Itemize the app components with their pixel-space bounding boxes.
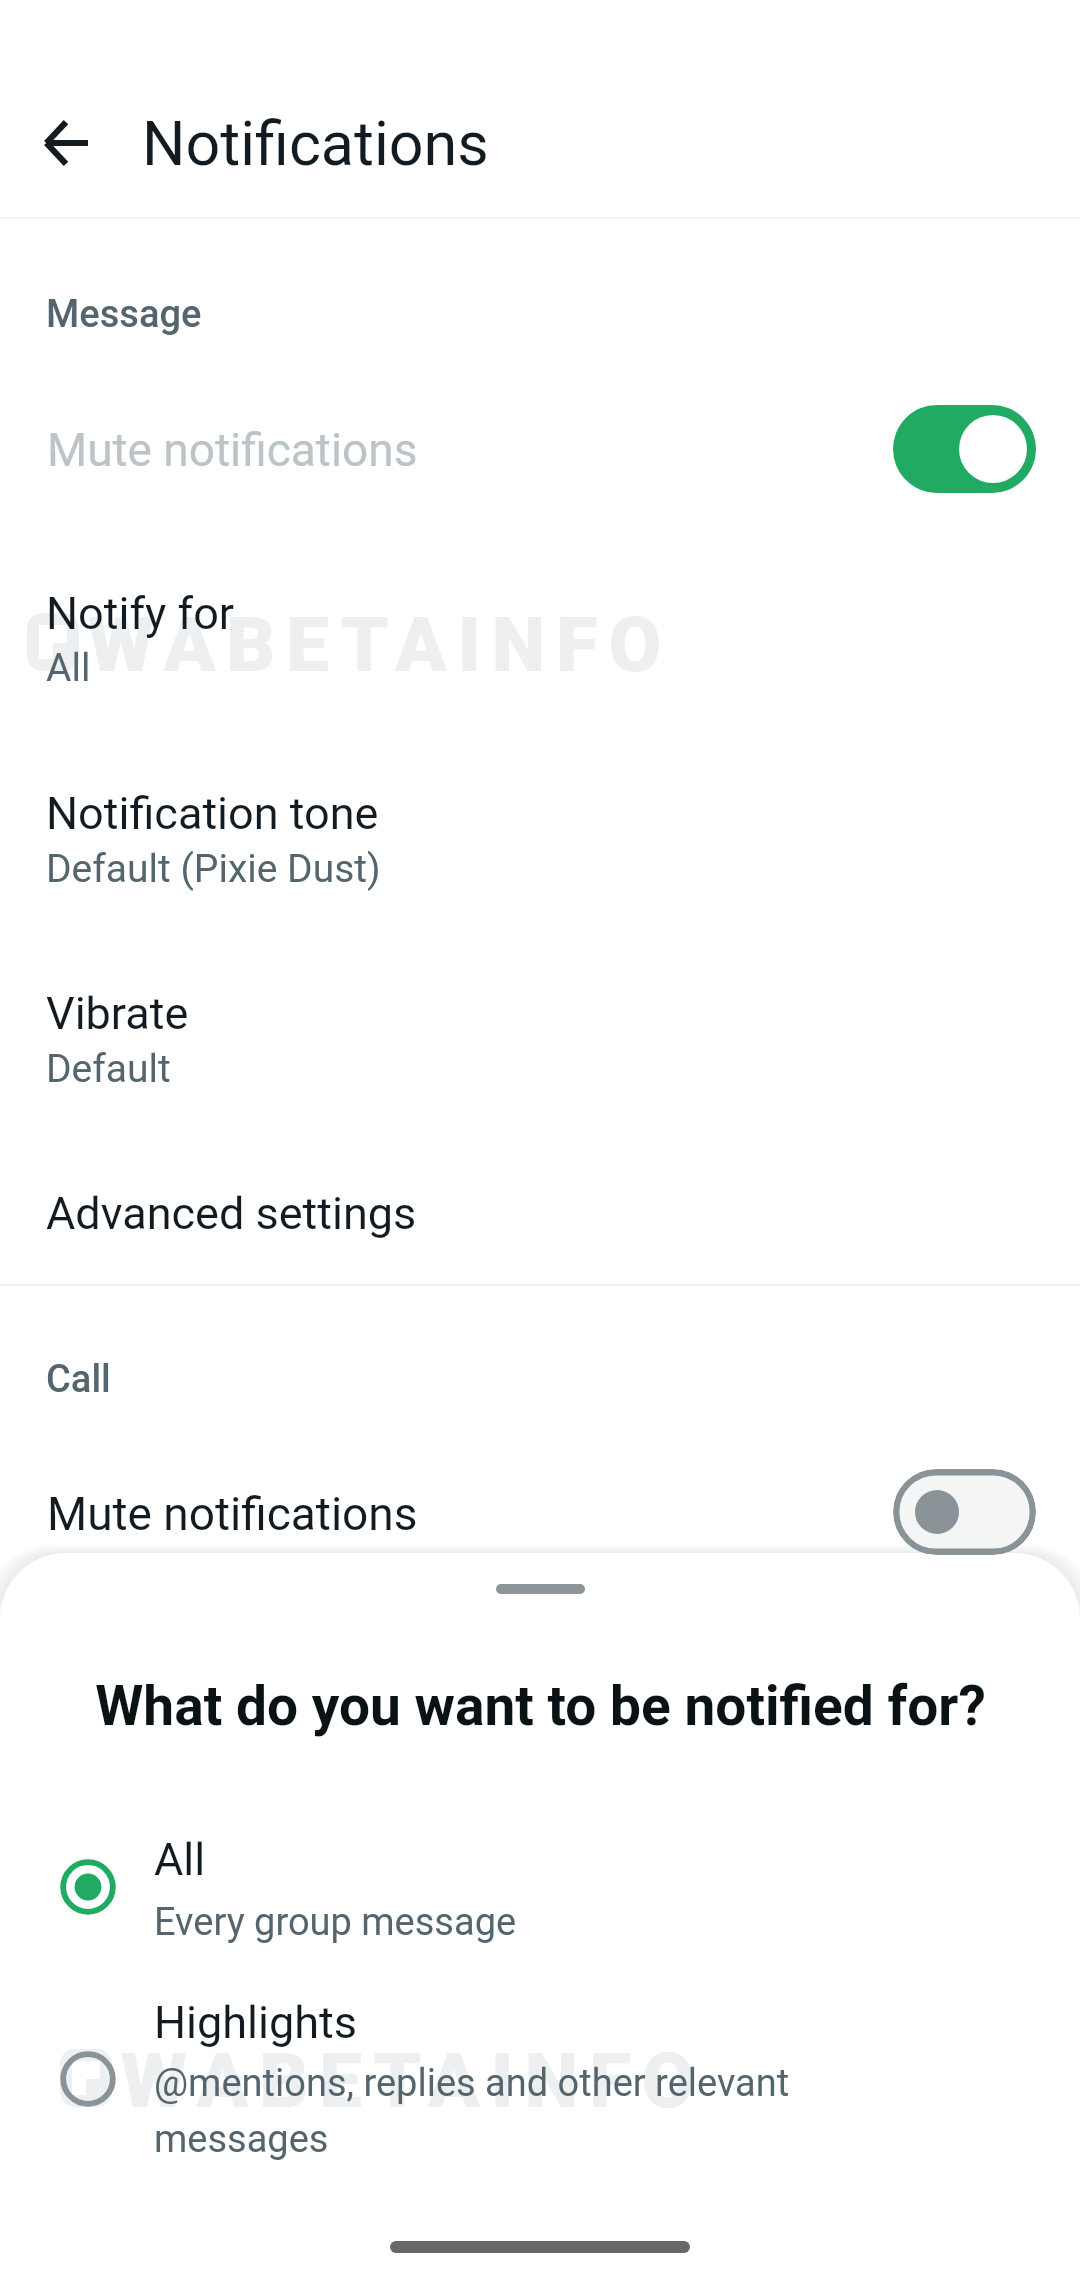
staticText: Notifications [142, 108, 489, 179]
staticText: Mute notifications [47, 423, 418, 477]
button[interactable]: Back [18, 95, 114, 191]
button[interactable]: Mute notifications [0, 1450, 1080, 1554]
button[interactable]: Advanced settings [0, 1160, 1080, 1280]
staticText: Call [46, 1357, 111, 1402]
staticText: Notify for [46, 587, 235, 640]
staticText: Advanced settings [46, 1187, 417, 1240]
staticText: Notification tone [46, 787, 379, 840]
button[interactable]: Drag handle [496, 1584, 585, 1594]
staticText: Vibrate [46, 987, 189, 1040]
staticText: Default [46, 1046, 171, 1092]
staticText: WABETAINFO [121, 2036, 706, 2125]
staticText: All [46, 645, 91, 691]
staticText: Default (Pixie Dust) [46, 846, 381, 892]
button[interactable]: Notification tone [0, 745, 1080, 915]
staticText: WABETAINFO [88, 600, 673, 689]
button[interactable]: Notify for [0, 545, 1080, 715]
staticText: Every group message [154, 1900, 854, 1945]
button[interactable]: Mute call notifications, off [893, 1469, 1036, 1555]
button[interactable]: Mute notifications [0, 380, 1080, 520]
staticText: All [154, 1833, 206, 1886]
button[interactable]: All [0, 1818, 1080, 1968]
staticText: Message [46, 292, 202, 337]
staticText: @mentions, replies and other relevant me… [154, 2061, 854, 2162]
staticText: Mute notifications [47, 1487, 418, 1541]
button[interactable]: Notifications [133, 95, 489, 191]
button[interactable]: Mute message notifications, on [893, 405, 1036, 493]
staticText: What do you want to be notified for? [95, 1674, 986, 1738]
button[interactable]: Highlights [0, 1985, 1080, 2175]
staticText: Highlights [154, 1996, 357, 2049]
button[interactable]: Vibrate [0, 945, 1080, 1115]
